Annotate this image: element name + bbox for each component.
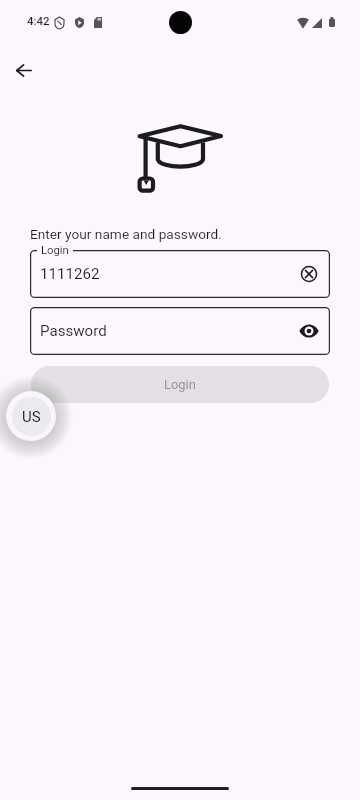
staticText: Login (164, 377, 196, 392)
button[interactable]: Login (31, 366, 329, 403)
button[interactable]: Clear text (296, 261, 322, 287)
staticText: US (22, 408, 41, 426)
staticText: Login (41, 244, 69, 257)
button[interactable]: Show password (296, 318, 322, 344)
button[interactable]: US (6, 391, 56, 441)
staticText: 1111262 (40, 265, 100, 283)
button[interactable]: Back (4, 50, 44, 90)
staticText: Password (40, 322, 107, 340)
staticText: 4:42 (27, 14, 50, 27)
staticText: Enter your name and password. (30, 226, 222, 242)
